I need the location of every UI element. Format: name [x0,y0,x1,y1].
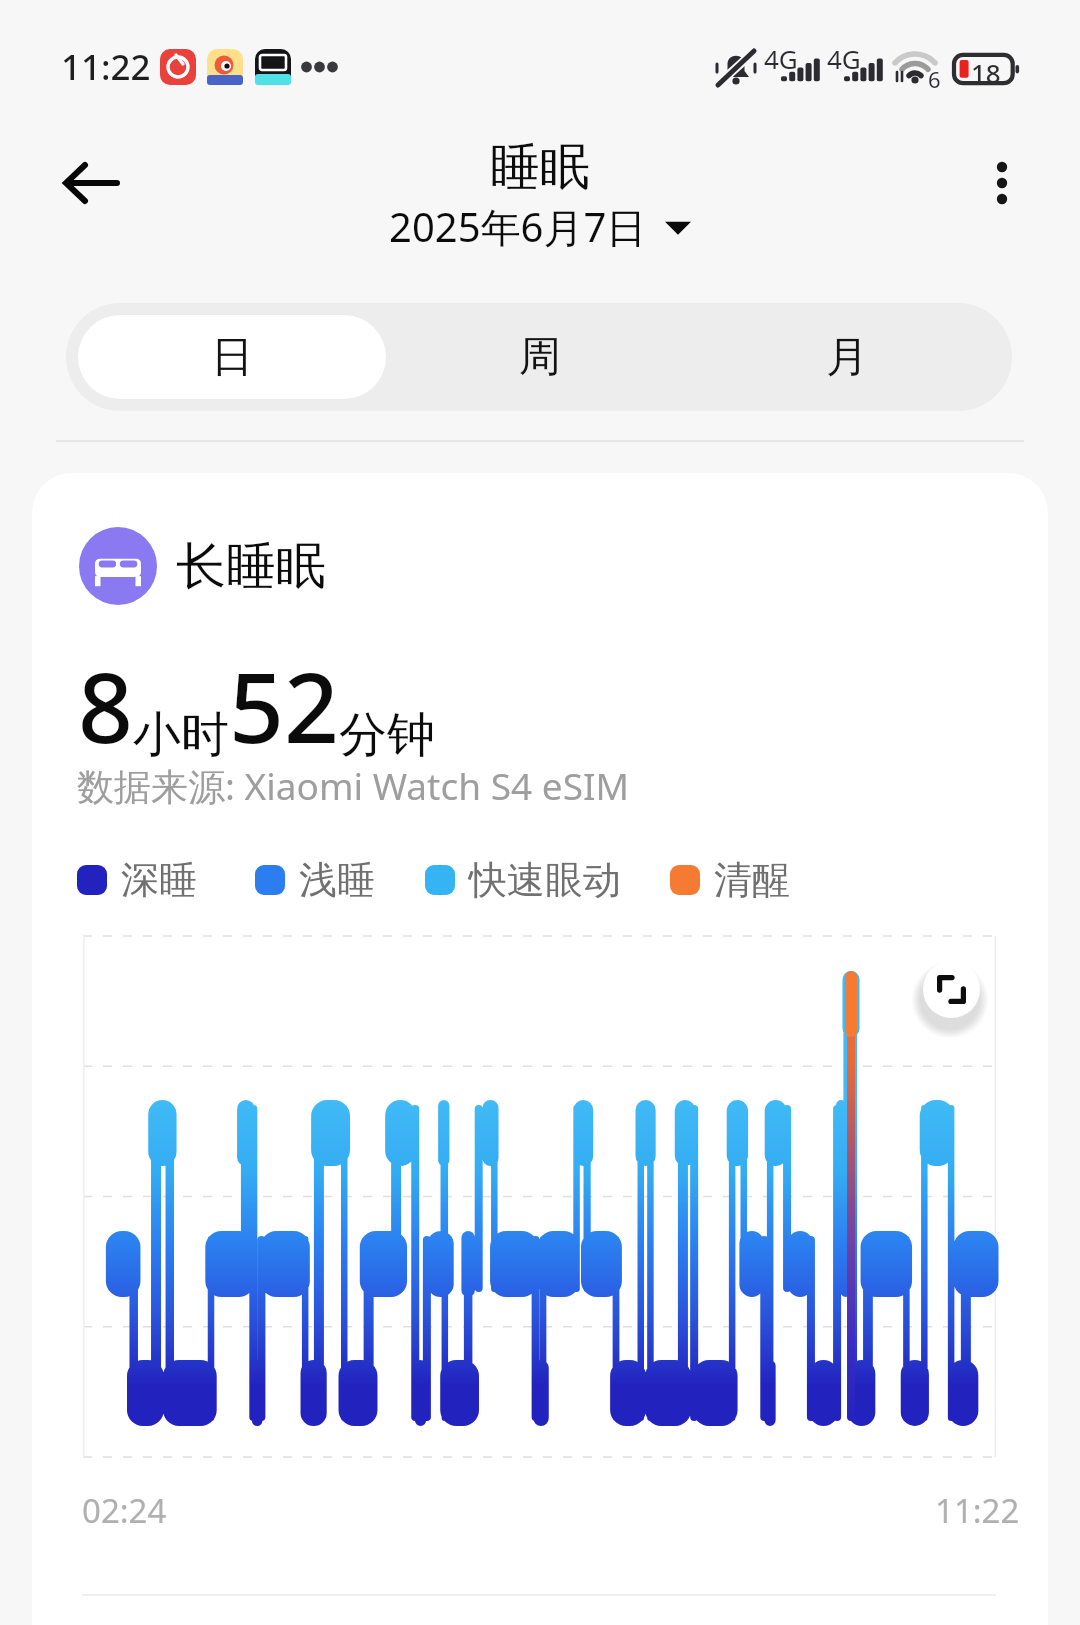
staticText: 2025年6月7日 [389,199,647,254]
staticText: 11:22 [61,43,151,91]
staticText: 11:22 [935,1488,1020,1533]
button[interactable]: Fullscreen [923,961,980,1018]
staticText: 6 [928,64,941,94]
button[interactable]: 2025年6月7日 [389,199,691,254]
staticText: 长睡眠 [176,535,326,598]
button[interactable]: 月 [693,315,1000,399]
staticText: 清醒 [714,856,790,904]
staticText: 4G [764,41,798,76]
button[interactable]: Back [51,143,131,223]
staticText: 数据来源: Xiaomi Watch S4 eSIM [77,760,630,811]
staticText: 睡眠 [490,136,590,199]
staticText: 日 [211,331,253,384]
staticText: 4G [827,41,861,76]
staticText: 18 [971,55,1001,90]
staticText: 02:24 [82,1488,167,1533]
staticText: 深睡 [121,856,197,904]
button[interactable]: 日 [78,315,386,399]
staticText: 月 [826,331,868,384]
staticText: 周 [519,331,561,384]
staticText: 8 [78,640,133,771]
staticText: 小时 [133,705,229,765]
staticText: 分钟 [339,705,435,765]
button[interactable]: 周 [386,315,693,399]
staticText: 浅睡 [299,856,375,904]
button[interactable]: More options [962,143,1042,223]
staticText: 52 [229,640,339,771]
staticText: 快速眼动 [469,856,621,904]
